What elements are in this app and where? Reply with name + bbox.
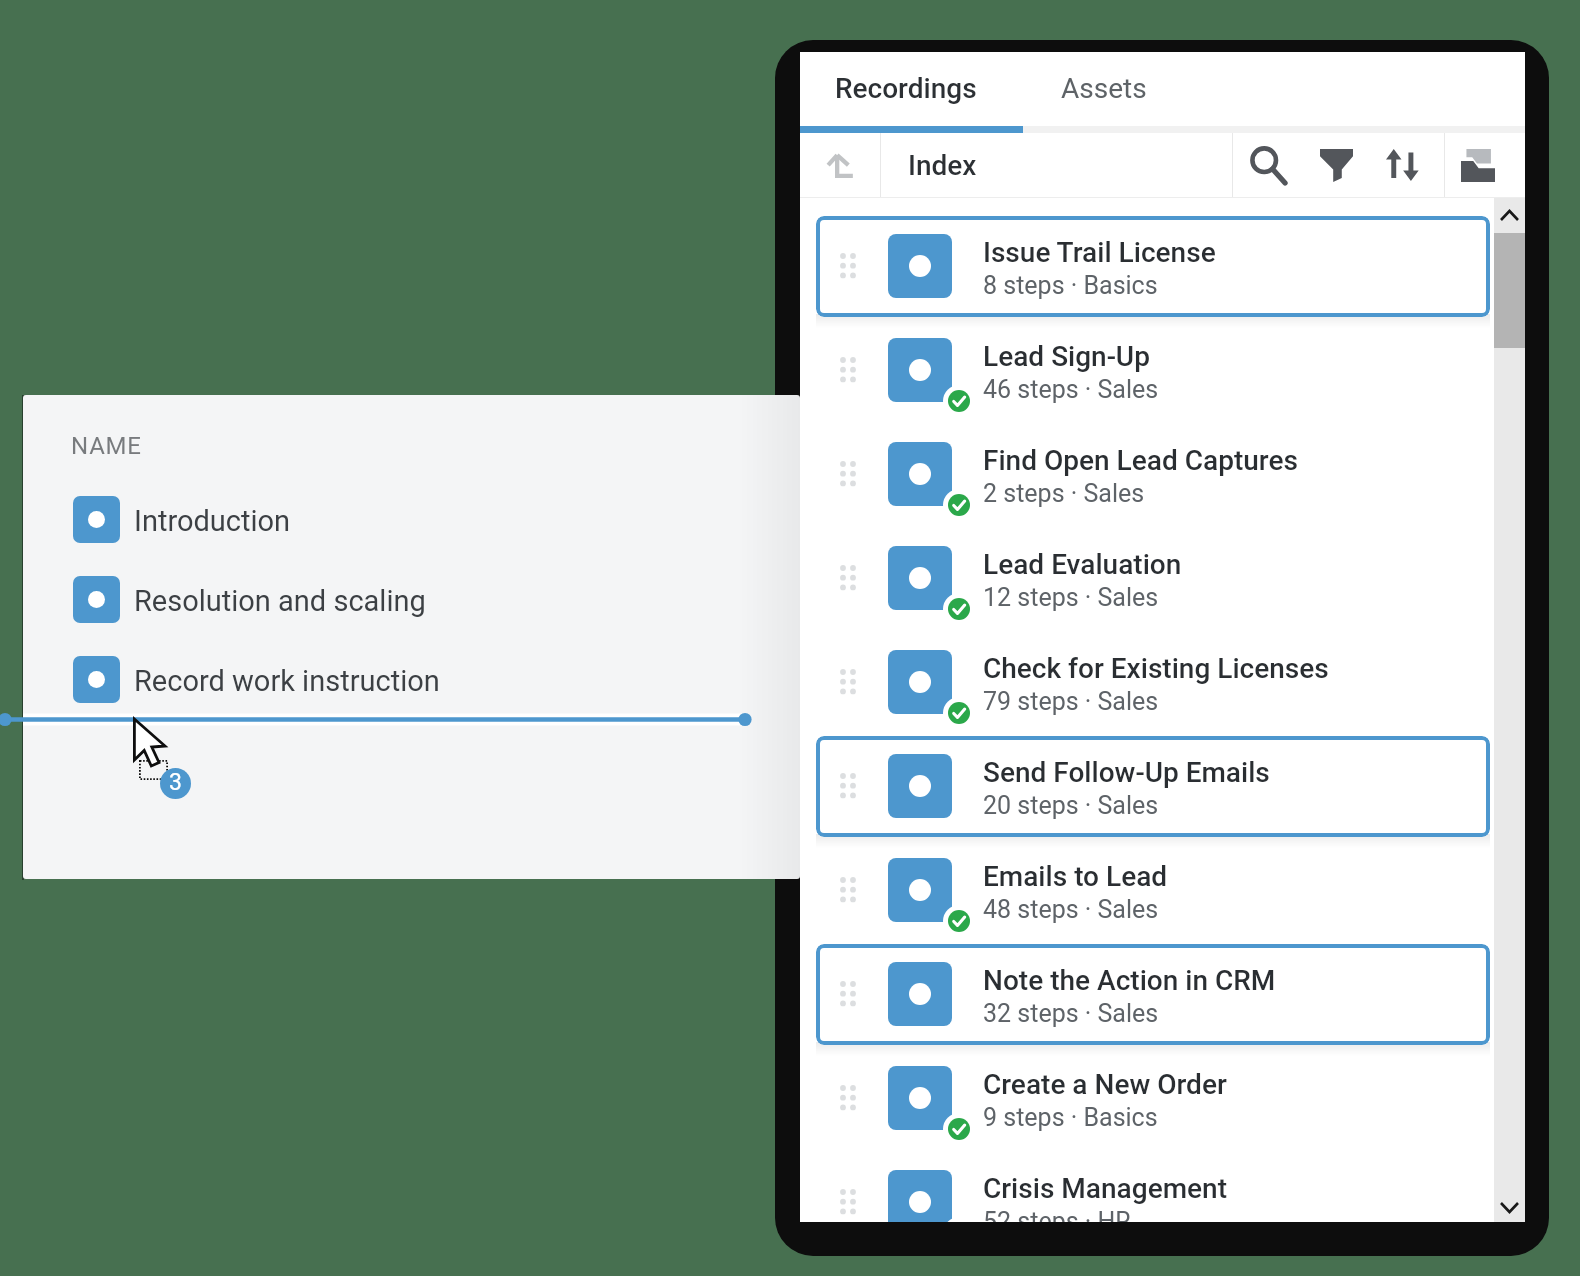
staticText: Create a New Order [983,1068,1227,1101]
staticText: 8 steps · Basics [983,271,1158,300]
staticText: Introduction [134,504,291,538]
staticText: Lead Evaluation [983,548,1182,581]
button[interactable]: Scroll up [1494,198,1525,233]
staticText: Check for Existing Licenses [983,652,1329,685]
button[interactable]: Crisis Management [800,1150,1494,1222]
button[interactable]: Recordings [800,52,1023,133]
staticText: 52 steps · HR [983,1207,1131,1222]
button[interactable]: Resolution and scaling [73,574,613,624]
staticText: Crisis Management [983,1172,1227,1205]
staticText: Emails to Lead [983,860,1168,893]
button[interactable]: Issue Trail License [800,214,1494,318]
button[interactable]: Scroll down [1494,1193,1525,1222]
button[interactable]: Filter [1303,133,1370,197]
staticText: Resolution and scaling [134,584,426,618]
staticText: NAME [71,432,142,460]
button[interactable]: Up one level [800,133,880,197]
staticText: 12 steps · Sales [983,583,1159,612]
button[interactable]: Check for Existing Licenses [800,630,1494,734]
button[interactable]: Move to folder [1438,133,1518,197]
button[interactable]: Note the Action in CRM [800,942,1494,1046]
button[interactable]: Sort [1365,133,1439,197]
staticText: 9 steps · Basics [983,1103,1158,1132]
button[interactable]: Emails to Lead [800,838,1494,942]
button[interactable]: Record work instruction [73,654,613,704]
button[interactable]: Send Follow-Up Emails [800,734,1494,838]
staticText: 32 steps · Sales [983,999,1159,1028]
staticText: 2 steps · Sales [983,479,1145,508]
staticText: Index [908,149,977,182]
button[interactable]: Find Open Lead Captures [800,422,1494,526]
staticText: Record work instruction [134,664,440,698]
staticText: Send Follow-Up Emails [983,756,1270,789]
staticText: 20 steps · Sales [983,791,1159,820]
staticText: Lead Sign-Up [983,340,1150,373]
button[interactable]: Lead Sign-Up [800,318,1494,422]
staticText: Note the Action in CRM [983,964,1276,997]
button[interactable]: Create a New Order [800,1046,1494,1150]
staticText: 79 steps · Sales [983,687,1159,716]
staticText: 46 steps · Sales [983,375,1159,404]
button[interactable]: Assets [1023,52,1223,133]
staticText: Issue Trail License [983,236,1216,269]
staticText: Find Open Lead Captures [983,444,1298,477]
button[interactable]: Introduction [73,494,613,544]
staticText: 48 steps · Sales [983,895,1159,924]
staticText: 3 [169,769,182,796]
staticText: Assets [1061,72,1147,105]
staticText: Recordings [835,72,977,105]
button[interactable]: Lead Evaluation [800,526,1494,630]
button[interactable]: Search [1233,133,1303,197]
